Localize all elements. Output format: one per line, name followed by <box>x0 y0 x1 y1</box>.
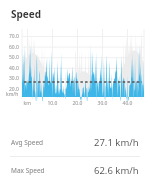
button[interactable]: Avg Speed <box>0 129 150 156</box>
staticText: 62.6 km/h <box>94 164 139 177</box>
staticText: Speed <box>11 7 42 21</box>
button[interactable] <box>0 26 150 120</box>
staticText: Avg Speed <box>11 138 44 147</box>
staticText: Max Speed <box>11 166 45 175</box>
button[interactable]: Max Speed <box>0 157 150 184</box>
staticText: 27.1 km/h <box>94 136 139 149</box>
